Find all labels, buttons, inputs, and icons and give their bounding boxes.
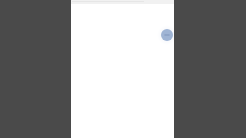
button[interactable]: Compose (157, 25, 177, 45)
button[interactable] (71, 0, 174, 4)
